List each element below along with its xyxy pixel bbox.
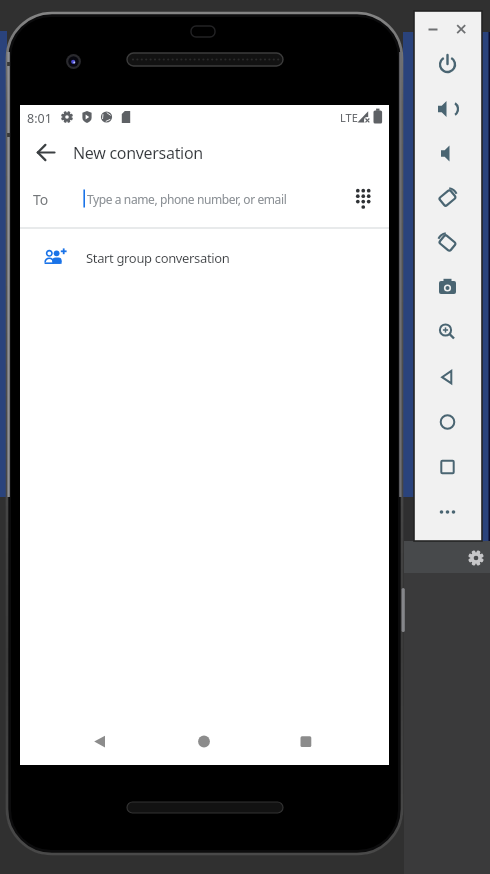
button[interactable] [26,184,346,214]
button[interactable] [433,408,462,436]
button[interactable] [433,453,462,481]
staticText: To [33,190,49,209]
button[interactable] [296,728,324,756]
button[interactable] [433,363,462,391]
button[interactable] [190,728,218,756]
button[interactable] [350,184,378,214]
button[interactable] [433,50,462,78]
button[interactable] [424,20,442,38]
button[interactable] [433,184,462,212]
staticText: New conversation [73,142,203,164]
button[interactable] [433,498,462,526]
staticText: Type a name, phone number, or email [87,191,287,207]
button[interactable] [433,229,462,257]
button[interactable] [433,317,462,345]
button[interactable] [433,95,462,123]
button[interactable] [30,140,56,166]
button[interactable] [433,139,462,167]
staticText: 8:01 [27,110,52,127]
button[interactable] [452,20,470,38]
button[interactable] [84,728,112,756]
button[interactable] [30,238,360,278]
button[interactable] [462,544,490,572]
button[interactable] [433,273,462,301]
staticText: Start group conversation [86,249,230,267]
staticText: LTE [340,110,358,125]
